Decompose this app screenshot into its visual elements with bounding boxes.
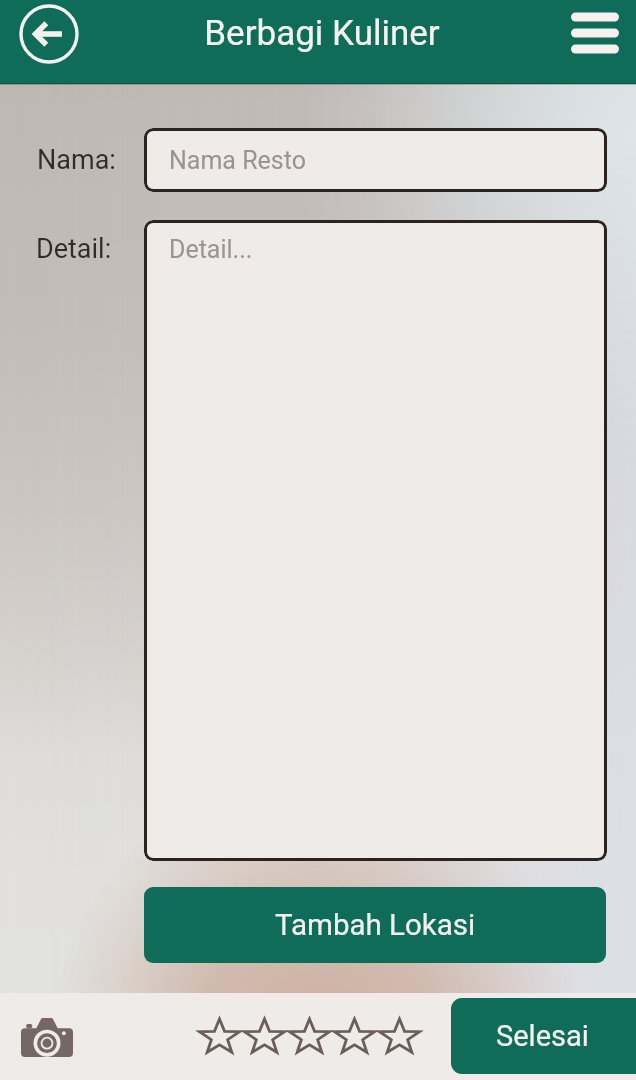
button[interactable]: Selesai bbox=[451, 998, 636, 1074]
staticText: Selesai bbox=[496, 1019, 589, 1053]
button[interactable]: Menu bbox=[567, 9, 622, 57]
staticText: Berbagi Kuliner bbox=[204, 13, 440, 54]
staticText: Nama: bbox=[37, 144, 116, 176]
staticText: Nama Resto bbox=[169, 146, 306, 175]
button[interactable]: Back bbox=[19, 4, 79, 64]
button[interactable]: Nama Resto bbox=[144, 128, 607, 192]
button[interactable]: Take photo bbox=[12, 1010, 82, 1064]
staticText: Detail: bbox=[36, 233, 112, 265]
button[interactable]: Rate 2 star bbox=[242, 1014, 287, 1058]
button[interactable]: Detail... bbox=[144, 220, 607, 861]
button[interactable]: Rate 3 star bbox=[287, 1014, 332, 1058]
button[interactable]: Tambah Lokasi bbox=[144, 887, 606, 963]
staticText: Detail... bbox=[169, 235, 253, 264]
button[interactable]: Rate 1 star bbox=[197, 1014, 242, 1058]
button[interactable]: Rate 5 star bbox=[377, 1014, 422, 1058]
button[interactable]: Rate 4 star bbox=[332, 1014, 377, 1058]
staticText: Tambah Lokasi bbox=[275, 908, 476, 943]
